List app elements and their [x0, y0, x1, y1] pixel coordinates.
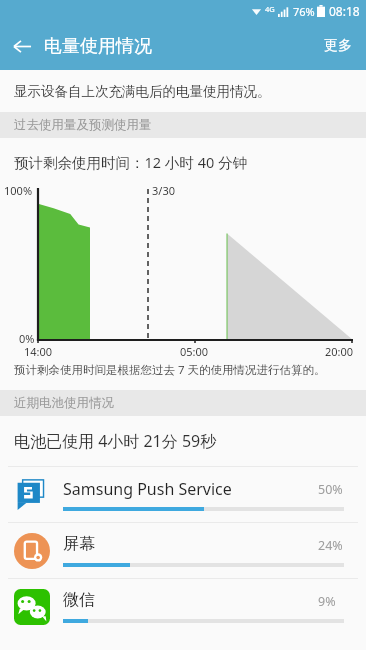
staticText: 预计剩余使用时间是根据您过去 7 天的使用情况进行估算的。 [14, 362, 326, 378]
staticText: 4G [265, 4, 275, 14]
staticText: Samsung Push Service [63, 478, 232, 500]
staticText: 50% [318, 481, 343, 498]
staticText: 100% [4, 183, 33, 198]
staticText: 更多 [324, 37, 352, 55]
staticText: 24% [318, 537, 343, 554]
staticText: 20:00 [325, 344, 354, 359]
staticText: 05:00 [180, 344, 209, 359]
button[interactable]: 更多 [310, 25, 366, 67]
staticText: 预计剩余使用时间：12 小时 40 分钟 [14, 152, 247, 172]
staticText: 0% [19, 331, 35, 346]
staticText: 9% [318, 593, 336, 610]
staticText: 屏幕 [63, 534, 95, 554]
staticText: 14:00 [24, 344, 53, 359]
staticText: 过去使用量及预测使用量 [14, 117, 152, 133]
staticText: 电池已使用 4小时 21分 59秒 [14, 430, 217, 452]
button[interactable]: Back [0, 24, 44, 68]
staticText: 76% [293, 4, 315, 19]
staticText: 电量使用情况 [44, 35, 152, 58]
button[interactable]: 屏幕 [0, 523, 366, 578]
staticText: 近期电池使用情况 [14, 395, 114, 411]
staticText: 显示设备自上次充满电后的电量使用情况。 [14, 83, 271, 100]
staticText: 微信 [63, 590, 95, 610]
staticText: 3/30 [152, 183, 175, 198]
staticText: 08:18 [329, 3, 360, 19]
button[interactable]: Samsung Push Service [0, 467, 366, 522]
button[interactable]: 微信 [0, 579, 366, 634]
